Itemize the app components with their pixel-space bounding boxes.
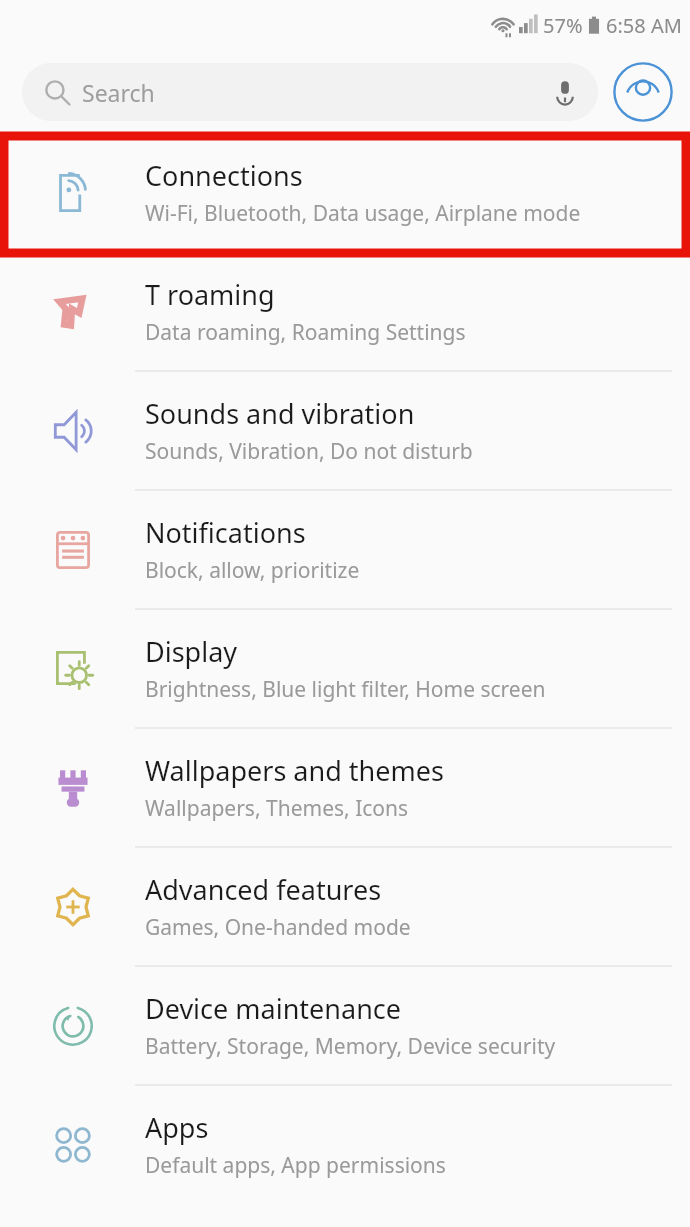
staticText: Notifications [145, 514, 306, 551]
staticText: Games, One-handed mode [145, 913, 411, 942]
staticText: 6:58 AM [606, 12, 682, 39]
button[interactable]: Search [22, 63, 598, 121]
staticText: Wi-Fi, Bluetooth, Data usage, Airplane m… [145, 199, 581, 228]
button[interactable]: Apps [0, 1086, 690, 1203]
staticText: 57% [543, 12, 583, 39]
button[interactable]: Voice search [550, 77, 580, 107]
staticText: Search [82, 77, 550, 108]
staticText: T roaming [145, 276, 275, 313]
button[interactable]: Sounds and vibration [0, 372, 690, 491]
button[interactable]: Notifications [0, 491, 690, 610]
button[interactable]: Connections [0, 134, 690, 253]
staticText: Data roaming, Roaming Settings [145, 318, 466, 347]
staticText: Device maintenance [145, 990, 402, 1027]
staticText: Default apps, App permissions [145, 1151, 446, 1180]
staticText: Apps [145, 1109, 209, 1146]
staticText: Battery, Storage, Memory, Device securit… [145, 1032, 556, 1061]
button[interactable]: Advanced features [0, 848, 690, 967]
staticText: Brightness, Blue light filter, Home scre… [145, 675, 546, 704]
staticText: Block, allow, prioritize [145, 556, 360, 585]
staticText: Display [145, 633, 238, 670]
staticText: Wallpapers and themes [145, 752, 444, 789]
button[interactable]: Account [612, 61, 674, 123]
staticText: Connections [145, 157, 303, 194]
staticText: Sounds and vibration [145, 395, 415, 432]
button[interactable]: Device maintenance [0, 967, 690, 1086]
button[interactable]: Display [0, 610, 690, 729]
staticText: Sounds, Vibration, Do not disturb [145, 437, 473, 466]
button[interactable]: Wallpapers and themes [0, 729, 690, 848]
staticText: Wallpapers, Themes, Icons [145, 794, 409, 823]
staticText: Advanced features [145, 871, 382, 908]
button[interactable]: T roaming [0, 253, 690, 372]
